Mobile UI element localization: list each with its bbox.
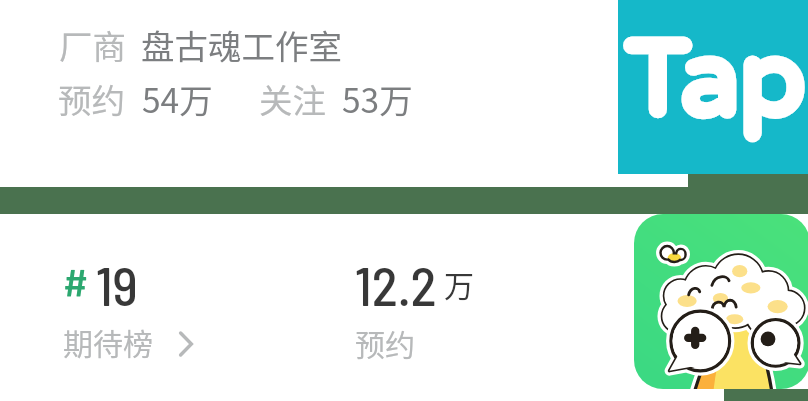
staticText: 万 xyxy=(444,262,474,305)
button[interactable]: TapTap xyxy=(618,0,808,174)
staticText: Tap xyxy=(624,21,804,146)
button[interactable]: 期待榜 xyxy=(55,318,205,368)
staticText: 期待榜 xyxy=(63,320,153,363)
staticText: # xyxy=(63,258,89,306)
button[interactable]: App icon xyxy=(634,214,808,389)
staticText: Tap xyxy=(624,21,804,146)
staticText: 19 xyxy=(96,252,138,317)
staticText: 关注 xyxy=(259,74,326,123)
staticText: 厂商 xyxy=(59,20,126,69)
staticText: 预约 xyxy=(58,74,125,123)
staticText: 54万 xyxy=(142,74,213,123)
staticText: 12.2 xyxy=(355,252,437,317)
staticText: 53万 xyxy=(342,74,413,123)
staticText: 预约 xyxy=(355,321,415,364)
staticText: 盘古魂工作室 xyxy=(141,20,342,69)
